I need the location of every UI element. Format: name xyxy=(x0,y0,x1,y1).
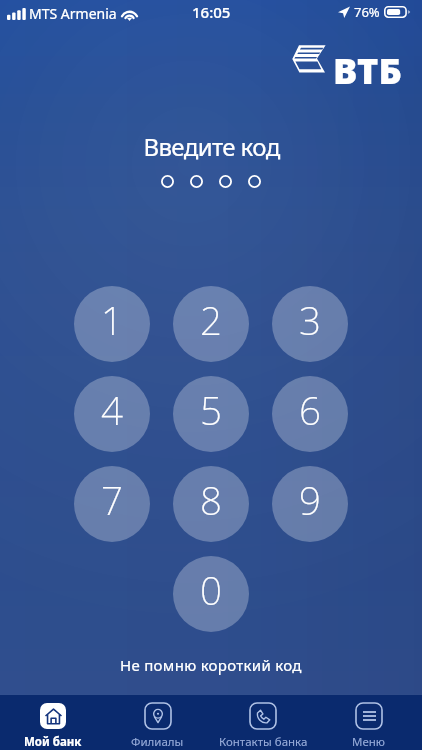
staticText: ВТБ xyxy=(333,46,402,95)
button[interactable]: Bank contacts xyxy=(210,695,316,750)
button[interactable]: 9 xyxy=(272,466,348,542)
button[interactable]: 1 xyxy=(74,286,150,362)
button[interactable]: 4 xyxy=(74,376,150,452)
staticText: Филиалы xyxy=(131,734,184,750)
staticText: 6 xyxy=(299,384,321,436)
button[interactable]: 2 xyxy=(173,286,249,362)
button[interactable]: 0 xyxy=(173,556,249,632)
other: Branches xyxy=(145,703,171,729)
other: Bank contacts xyxy=(250,703,276,729)
staticText: 4 xyxy=(101,384,123,436)
button[interactable]: 3 xyxy=(272,286,348,362)
staticText: 16:05 xyxy=(192,2,231,22)
staticText: Контакты банка xyxy=(219,734,308,750)
staticText: 5 xyxy=(200,384,222,436)
staticText: Введите код xyxy=(143,130,280,163)
staticText: 1 xyxy=(101,294,123,346)
staticText: 7 xyxy=(101,474,123,526)
button[interactable]: Branches xyxy=(105,695,210,750)
staticText: 2 xyxy=(200,294,222,346)
button[interactable]: Menu xyxy=(316,695,422,750)
staticText: Мой банк xyxy=(24,734,82,750)
staticText: 0 xyxy=(200,564,222,616)
button[interactable]: 8 xyxy=(173,466,249,542)
button[interactable]: 5 xyxy=(173,376,249,452)
button[interactable]: Мой банк xyxy=(0,695,105,750)
staticText: 76% xyxy=(354,3,380,21)
staticText: 3 xyxy=(299,294,321,346)
other: VTB logo xyxy=(286,36,410,90)
staticText: Меню xyxy=(352,734,386,750)
button[interactable]: Не помню короткий код xyxy=(0,647,422,683)
staticText: MTS Armenia xyxy=(29,4,117,23)
button[interactable]: 6 xyxy=(272,376,348,452)
staticText: Не помню короткий код xyxy=(120,655,302,675)
other: Menu xyxy=(356,703,382,729)
staticText: 9 xyxy=(299,474,321,526)
button[interactable]: 7 xyxy=(74,466,150,542)
staticText: 8 xyxy=(200,474,222,526)
